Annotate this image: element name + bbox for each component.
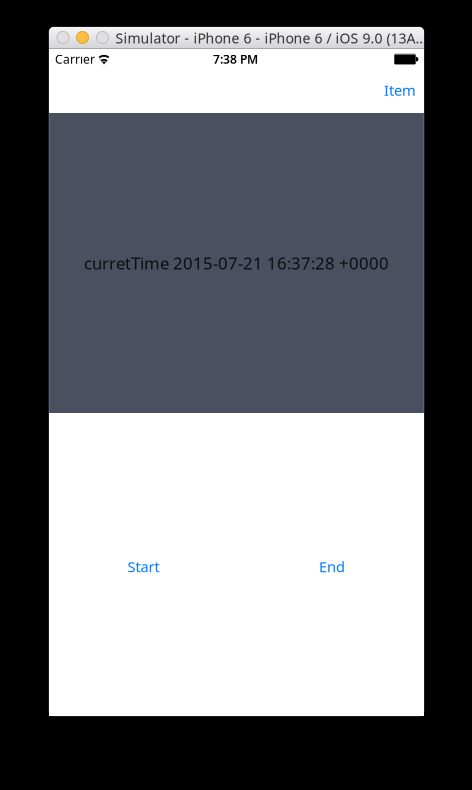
- staticText: Start: [127, 556, 159, 576]
- button[interactable]: Minimize: [76, 31, 88, 43]
- staticText: Carrier: [55, 51, 95, 67]
- staticText: 7:38 PM: [213, 51, 258, 67]
- staticText: Item: [384, 80, 416, 100]
- staticText: curretTime 2015-07-21 16:37:28 +0000: [84, 252, 389, 274]
- button[interactable]: Item: [373, 73, 427, 107]
- button[interactable]: Start: [111, 550, 175, 582]
- button[interactable]: Close: [57, 31, 69, 43]
- staticText: Simulator - iPhone 6 - iPhone 6 / iOS 9.…: [115, 28, 426, 48]
- staticText: End: [319, 556, 345, 576]
- button[interactable]: End: [300, 550, 364, 582]
- button[interactable]: Zoom: [96, 31, 108, 43]
